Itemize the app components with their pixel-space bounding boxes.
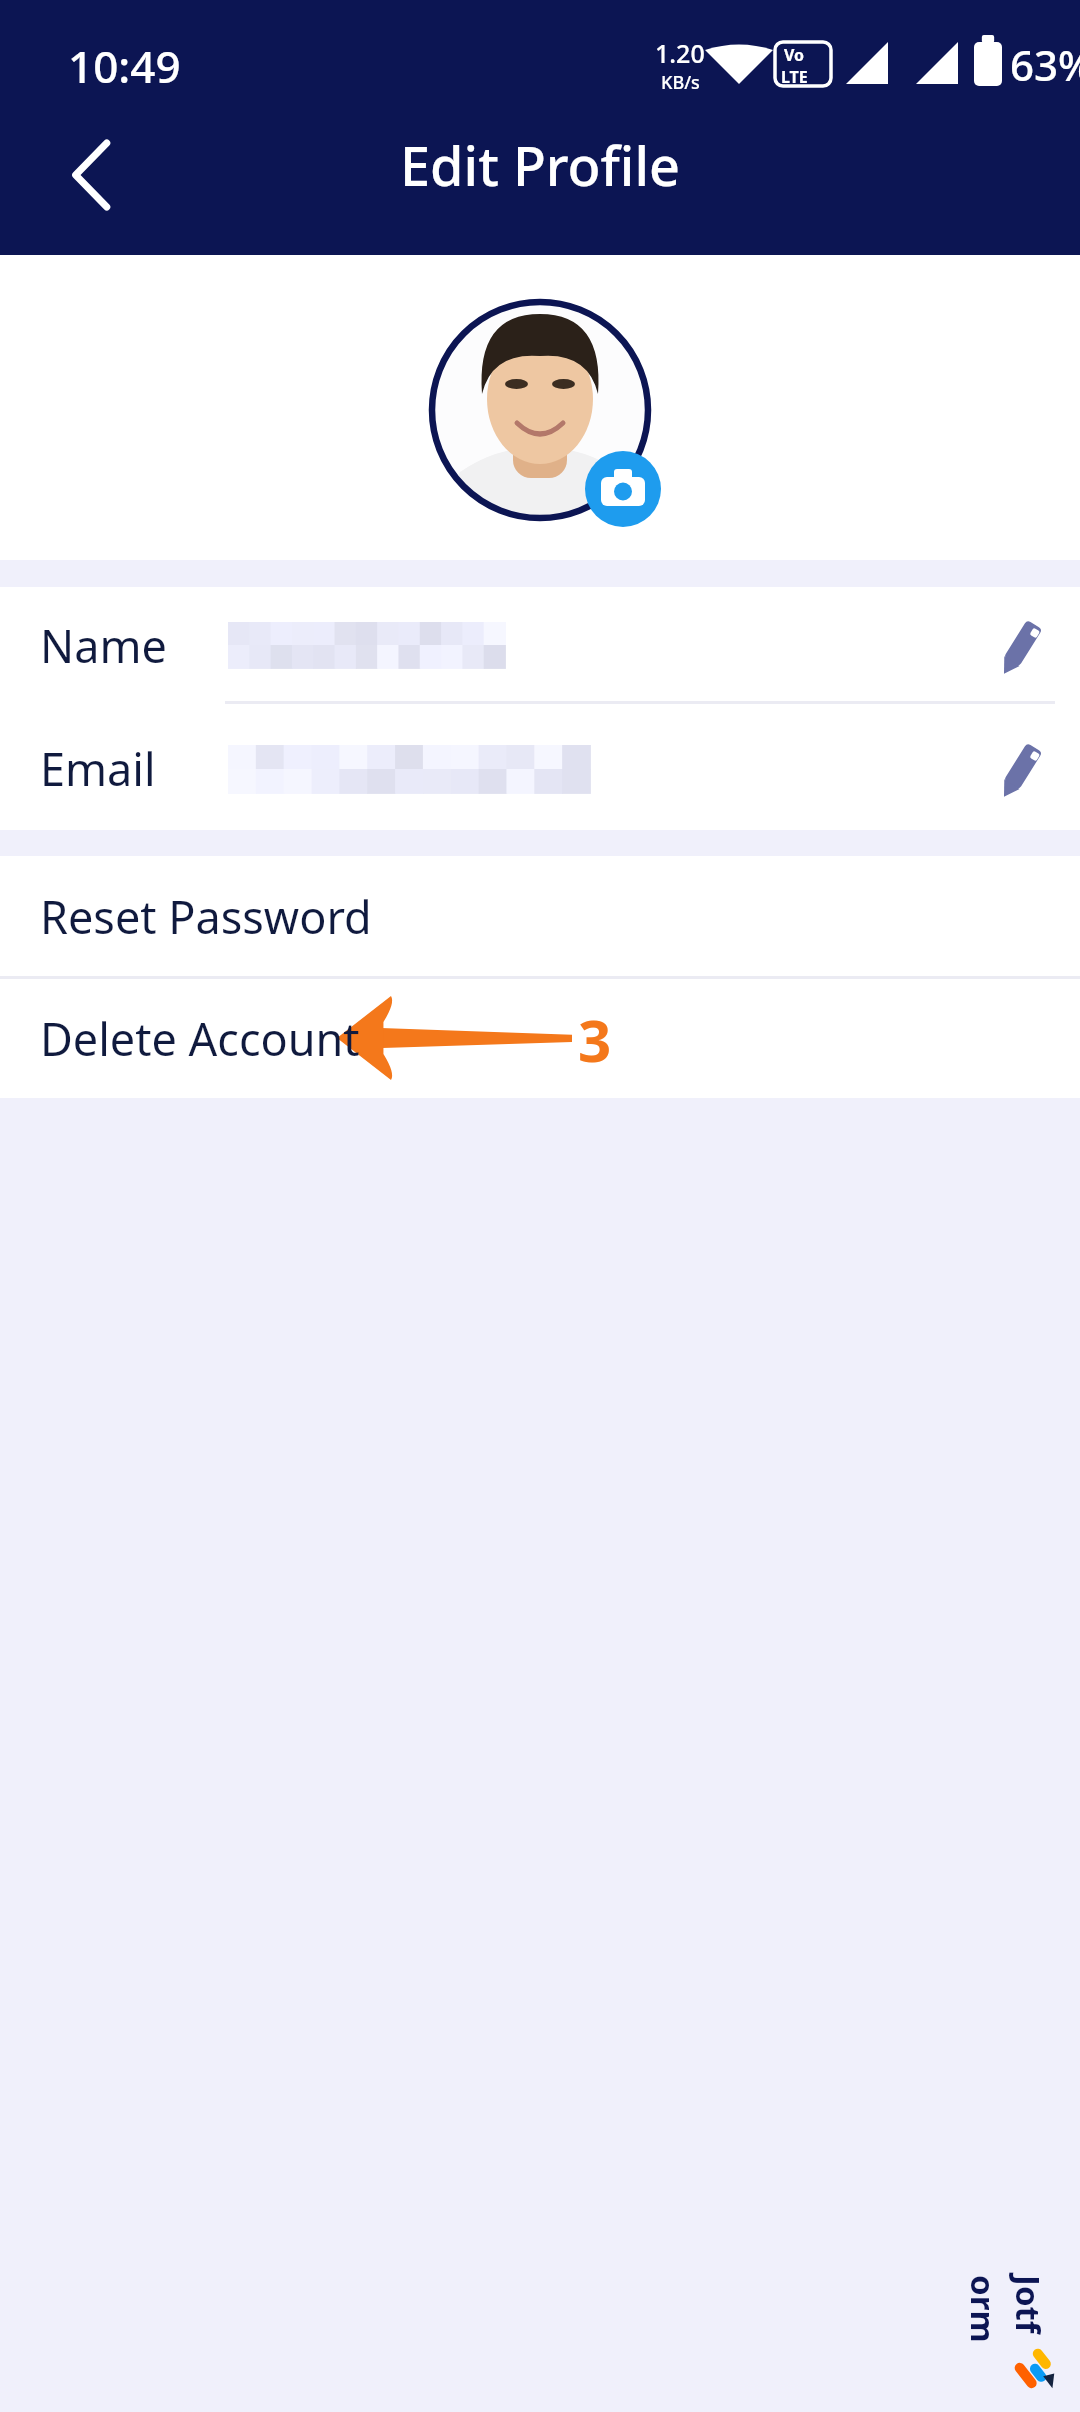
button[interactable]: Change profile photo xyxy=(424,294,656,526)
staticText: 10:49 xyxy=(68,36,181,96)
staticText: Edit Profile xyxy=(400,128,680,202)
staticText: Email xyxy=(40,738,156,799)
staticText: LTE xyxy=(781,66,808,88)
staticText: Jotform xyxy=(961,2275,1051,2353)
staticText: 3 xyxy=(578,1000,612,1079)
staticText: Name xyxy=(40,615,167,676)
button[interactable]: Back xyxy=(30,119,142,231)
staticText: KB/s xyxy=(661,70,700,95)
staticText: 1.20 xyxy=(655,36,705,70)
button[interactable]: Delete Account xyxy=(0,979,1080,1098)
staticText: Vo xyxy=(784,44,805,66)
button[interactable]: Email xyxy=(0,707,1080,830)
staticText: Delete Account xyxy=(40,1008,360,1069)
staticText: Reset Password xyxy=(40,886,372,947)
staticText: 63% xyxy=(1010,36,1080,93)
button[interactable]: Reset Password xyxy=(0,856,1080,976)
button[interactable]: Name xyxy=(0,587,1080,703)
